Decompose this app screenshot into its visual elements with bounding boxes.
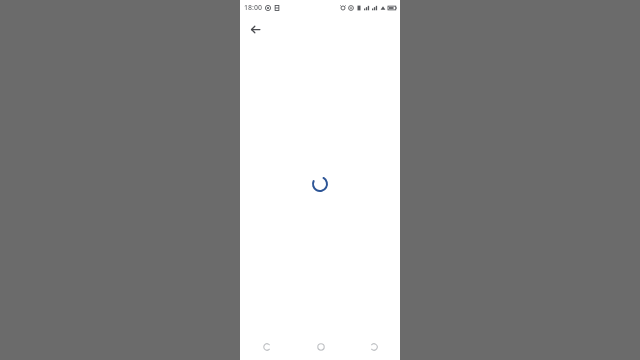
staticText: 18:00 <box>244 3 262 13</box>
button[interactable]: Back <box>244 18 266 40</box>
button[interactable]: Recent apps <box>347 334 400 360</box>
button[interactable]: Home <box>294 334 347 360</box>
button[interactable]: Back <box>240 334 294 360</box>
